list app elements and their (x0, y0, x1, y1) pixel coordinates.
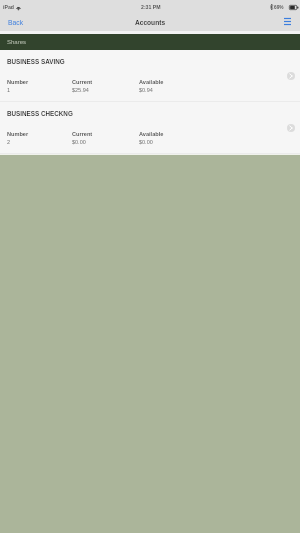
staticText: iPad (3, 4, 14, 10)
staticText: $0.00 (72, 139, 86, 145)
staticText: 1 (7, 87, 11, 93)
button[interactable]: BUSINESS SAVING (0, 50, 300, 102)
staticText: Number (7, 131, 29, 137)
button[interactable]: Menu (278, 16, 300, 29)
staticText: 2 (7, 139, 11, 145)
staticText: Available (139, 131, 164, 137)
staticText: 2:31 PM (141, 4, 161, 10)
staticText: Current (72, 131, 93, 137)
button[interactable]: Shares (0, 34, 300, 50)
staticText: $0.00 (139, 139, 153, 145)
staticText: Back (8, 19, 24, 27)
staticText: Current (72, 79, 93, 85)
staticText: Number (7, 79, 29, 85)
staticText: $0.94 (139, 87, 153, 93)
staticText: Accounts (135, 19, 166, 26)
staticText: 69% (274, 5, 284, 10)
staticText: $25.94 (72, 87, 89, 93)
staticText: BUSINESS SAVING (7, 58, 65, 65)
staticText: BUSINESS CHECKNG (7, 110, 73, 117)
staticText: Available (139, 79, 164, 85)
staticText: Shares (7, 39, 27, 46)
button[interactable]: Back (0, 16, 32, 30)
button[interactable]: BUSINESS CHECKNG (0, 102, 300, 154)
